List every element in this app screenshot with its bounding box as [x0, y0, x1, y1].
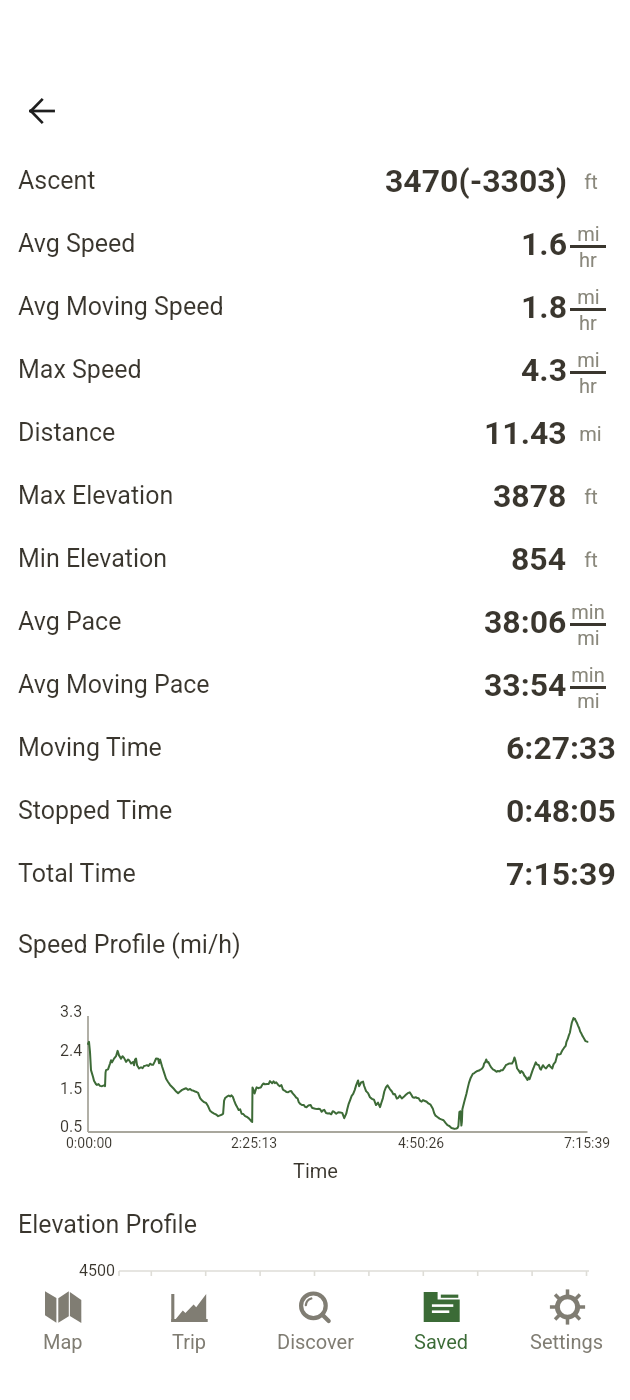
staticText: 38:06: [484, 603, 567, 641]
button[interactable]: Max Elevation: [0, 464, 630, 527]
staticText: 7:15:39: [506, 855, 616, 893]
button[interactable]: Moving Time: [0, 716, 630, 779]
staticText: ft: [584, 170, 598, 193]
staticText: Max Elevation: [18, 481, 174, 510]
button[interactable]: Saved: [378, 1276, 504, 1400]
staticText: mi: [577, 285, 600, 308]
staticText: mi: [577, 689, 600, 712]
button[interactable]: Avg Speed: [0, 212, 630, 275]
staticText: 1.8: [521, 288, 567, 326]
button[interactable]: Stopped Time: [0, 779, 630, 842]
button[interactable]: Back: [15, 84, 69, 138]
staticText: 0:48:05: [506, 792, 616, 830]
staticText: 7:15:39: [564, 1135, 611, 1151]
staticText: Avg Pace: [18, 607, 122, 636]
staticText: ft: [584, 548, 598, 571]
staticText: 11.43: [484, 414, 567, 452]
staticText: 33:54: [484, 666, 567, 704]
staticText: Map: [43, 1330, 83, 1353]
staticText: 854: [511, 540, 567, 578]
staticText: mi: [579, 422, 602, 445]
staticText: Max Speed: [18, 355, 142, 384]
staticText: hr: [579, 248, 597, 271]
staticText: Discover: [277, 1330, 354, 1353]
staticText: Avg Speed: [18, 229, 136, 258]
staticText: Saved: [414, 1330, 469, 1353]
button[interactable]: Total Time: [0, 842, 630, 905]
staticText: mi: [577, 626, 600, 649]
staticText: mi: [577, 222, 600, 245]
staticText: 1.6: [521, 225, 567, 263]
button[interactable]: Avg Moving Pace: [0, 653, 630, 716]
staticText: Settings: [530, 1330, 604, 1353]
staticText: Stopped Time: [18, 796, 173, 825]
staticText: Avg Moving Pace: [18, 670, 210, 699]
staticText: 1.5: [60, 1079, 83, 1098]
staticText: 4.3: [521, 351, 567, 389]
staticText: Distance: [18, 418, 116, 447]
staticText: min: [571, 600, 605, 623]
staticText: 3470(-3303): [385, 162, 567, 200]
staticText: Speed Profile (mi/h): [18, 930, 241, 959]
staticText: Min Elevation: [18, 544, 168, 573]
button[interactable]: Avg Moving Speed: [0, 275, 630, 338]
button[interactable]: Trip: [126, 1276, 252, 1400]
staticText: Trip: [172, 1330, 207, 1353]
staticText: Elevation Profile: [18, 1210, 197, 1239]
button[interactable]: Distance: [0, 401, 630, 464]
staticText: 0:00:00: [66, 1135, 113, 1151]
staticText: Moving Time: [18, 733, 162, 762]
staticText: 4500: [79, 1261, 115, 1280]
button[interactable]: Avg Pace: [0, 590, 630, 653]
button[interactable]: Min Elevation: [0, 527, 630, 590]
staticText: 4:50:26: [398, 1135, 445, 1151]
staticText: Avg Moving Speed: [18, 292, 224, 321]
button[interactable]: Map: [0, 1276, 126, 1400]
button[interactable]: Ascent: [0, 149, 630, 212]
button[interactable]: Max Speed: [0, 338, 630, 401]
staticText: 2:25:13: [231, 1135, 278, 1151]
staticText: min: [571, 663, 605, 686]
staticText: Total Time: [18, 859, 136, 888]
staticText: Ascent: [18, 166, 96, 195]
staticText: hr: [579, 311, 597, 334]
staticText: 3.3: [60, 1002, 83, 1021]
button[interactable]: Settings: [504, 1276, 630, 1400]
staticText: 6:27:33: [506, 729, 616, 767]
staticText: 0.5: [60, 1117, 83, 1136]
staticText: hr: [579, 374, 597, 397]
staticText: ft: [584, 485, 598, 508]
staticText: 3878: [493, 477, 567, 515]
staticText: 2.4: [60, 1041, 83, 1060]
button[interactable]: Discover: [252, 1276, 378, 1400]
staticText: mi: [577, 348, 600, 371]
staticText: Time: [293, 1159, 338, 1182]
